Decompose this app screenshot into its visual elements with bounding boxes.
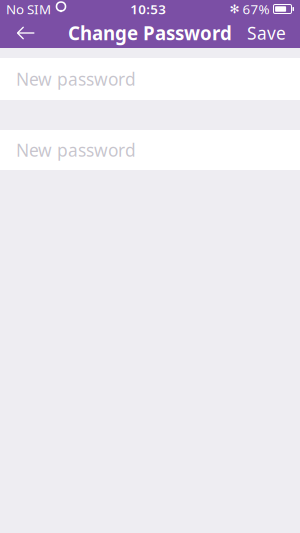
button[interactable]: Back: [4, 18, 48, 48]
button[interactable]: New password: [0, 58, 300, 100]
button[interactable]: New password: [0, 130, 300, 170]
staticText: Change Password: [68, 21, 232, 45]
staticText: New password: [16, 67, 136, 90]
staticText: No SIM: [6, 0, 51, 18]
staticText: 10:53: [130, 0, 166, 18]
button[interactable]: Save: [237, 18, 296, 48]
staticText: 67%: [242, 0, 269, 18]
staticText: Save: [247, 21, 286, 44]
staticText: New password: [16, 138, 136, 161]
staticText: ✻: [229, 2, 239, 16]
